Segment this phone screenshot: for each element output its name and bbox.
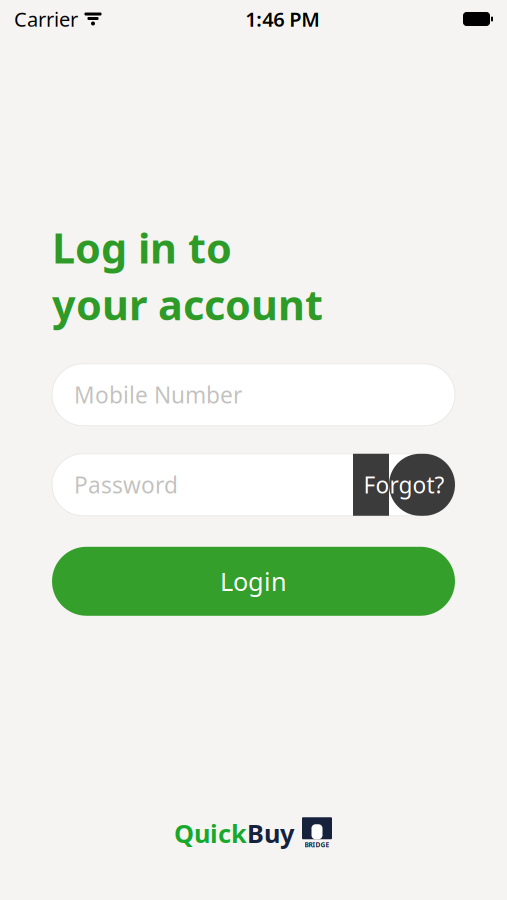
staticText: Mobile Number xyxy=(74,380,242,410)
staticText: BRIDGE xyxy=(304,840,329,849)
staticText: Forgot? xyxy=(363,470,444,500)
staticText: Quick xyxy=(174,816,247,850)
staticText: Buy xyxy=(247,816,294,850)
staticText: Log in to xyxy=(52,220,232,275)
staticText: your account xyxy=(52,277,323,332)
staticText: 1:46 PM xyxy=(245,6,320,32)
staticText: Carrier xyxy=(14,6,78,32)
staticText: Password xyxy=(74,470,178,500)
staticText: Login xyxy=(220,564,287,598)
button[interactable]: Login xyxy=(52,547,455,616)
button[interactable]: Forgot? xyxy=(353,454,455,516)
